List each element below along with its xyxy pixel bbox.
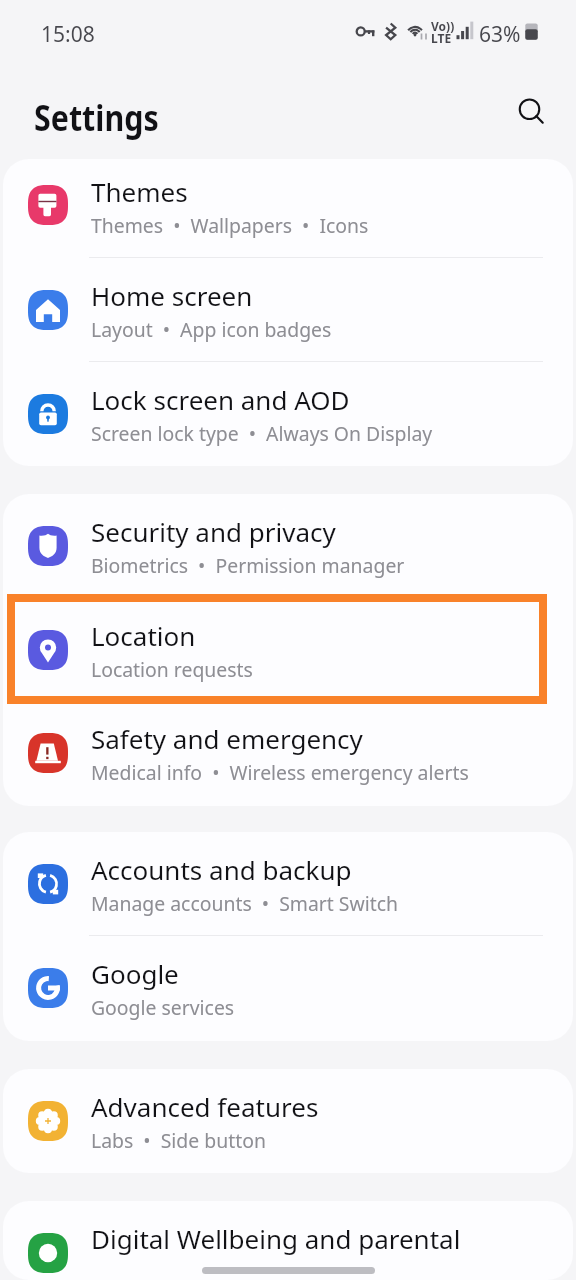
button[interactable]: Safety and emergency	[3, 701, 573, 806]
staticText: Themes • Wallpapers • Icons	[91, 212, 369, 238]
staticText: Labs • Side button	[91, 1127, 266, 1153]
button[interactable]: Google	[3, 936, 573, 1041]
staticText: Location requests	[91, 656, 253, 682]
staticText: Settings	[34, 93, 159, 142]
button[interactable]: Digital Wellbeing and parental	[3, 1201, 573, 1280]
staticText: Medical info • Wireless emergency alerts	[91, 759, 469, 785]
staticText: Layout • App icon badges	[91, 316, 332, 342]
staticText: Safety and emergency	[91, 721, 363, 756]
staticText: Accounts and backup	[91, 852, 352, 887]
staticText: Google services	[91, 994, 235, 1020]
staticText: Themes	[91, 174, 188, 209]
staticText: Digital Wellbeing and parental	[91, 1221, 461, 1256]
button[interactable]: Lock screen and AOD	[3, 362, 573, 466]
staticText: Advanced features	[91, 1089, 319, 1124]
staticText: Google	[91, 956, 179, 991]
button[interactable]: Security and privacy	[3, 494, 573, 598]
staticText: Vo))	[431, 18, 455, 34]
staticText: LTE	[431, 30, 452, 46]
button[interactable]: Location	[3, 598, 573, 701]
staticText: Home screen	[91, 278, 253, 313]
button[interactable]: Search	[505, 86, 555, 136]
button[interactable]: Home screen	[3, 258, 573, 362]
staticText: Manage accounts • Smart Switch	[91, 890, 399, 916]
staticText: Biometrics • Permission manager	[91, 552, 405, 578]
staticText: Location	[91, 618, 196, 653]
staticText: Security and privacy	[91, 514, 336, 549]
staticText: 63%	[479, 20, 521, 49]
staticText: Screen lock type • Always On Display	[91, 420, 433, 446]
button[interactable]: Advanced features	[3, 1069, 573, 1173]
staticText: Lock screen and AOD	[91, 382, 350, 417]
button[interactable]: Themes	[3, 159, 573, 258]
staticText: 15:08	[41, 20, 95, 49]
button[interactable]: Accounts and backup	[3, 832, 573, 936]
